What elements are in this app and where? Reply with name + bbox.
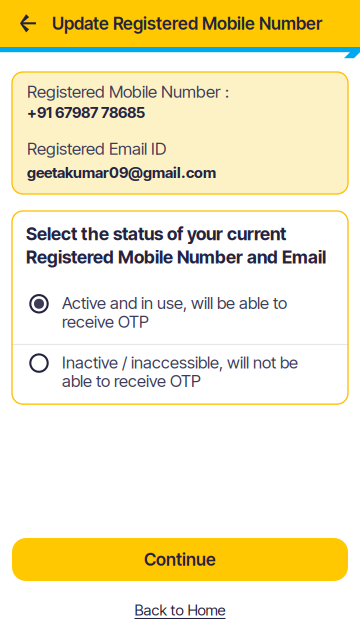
staticText: Update Registered Mobile Number xyxy=(52,13,322,34)
staticText: +91 67987 78685 xyxy=(27,103,145,122)
staticText: Select the status of your current Regist… xyxy=(26,222,326,269)
staticText: Continue xyxy=(144,549,216,570)
staticText: Inactive / inaccessible, will not be abl… xyxy=(62,353,298,390)
staticText: Registered Mobile Number : xyxy=(27,81,229,102)
staticText: Back to Home xyxy=(134,601,225,619)
staticText: geetakumar09@gmail.com xyxy=(27,163,216,182)
button[interactable]: Active and in use, will be able to recei… xyxy=(12,285,348,344)
staticText: Registered Email ID xyxy=(27,138,166,159)
staticText: Active and in use, will be able to recei… xyxy=(62,294,287,331)
button[interactable]: Back xyxy=(0,0,48,47)
button[interactable]: Continue xyxy=(12,538,348,581)
button[interactable]: Inactive / inaccessible, will not be abl… xyxy=(12,345,348,404)
button[interactable]: Back to Home xyxy=(0,597,360,623)
